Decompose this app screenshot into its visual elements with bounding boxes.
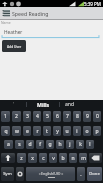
button[interactable]: k [76,140,84,149]
button[interactable]: Backspace [89,153,102,163]
staticText: r [36,128,39,135]
staticText: 9 [86,113,89,120]
staticText: 2 [15,113,18,120]
staticText: d [28,141,32,148]
button[interactable]: g [46,140,54,149]
button[interactable]: n [69,153,77,163]
staticText: f [39,141,41,148]
staticText: n [71,155,75,162]
button[interactable]: e [23,126,31,136]
staticText: Mills [37,101,50,108]
button[interactable]: j [66,140,74,149]
button[interactable]: b [59,153,67,163]
staticText: . [80,171,82,178]
staticText: q [4,128,8,135]
button[interactable]: d [26,140,34,149]
button[interactable]: Mills [27,100,59,109]
button[interactable]: m [79,153,87,163]
button[interactable]: u [63,126,71,136]
button[interactable]: . [77,167,85,181]
staticText: k [79,141,82,148]
button[interactable]: Settings [16,167,24,181]
staticText: w [15,128,19,135]
button[interactable]: z [17,153,26,163]
staticText: a [7,141,10,148]
button[interactable]: x [28,153,37,163]
staticText: ‘ [13,101,14,108]
button[interactable]: 0 [93,111,101,122]
staticText: p [95,128,99,135]
staticText: Name [1,20,11,25]
staticText: 5:39 PM [84,1,101,7]
staticText: Speed Reading [12,10,49,17]
button[interactable]: a [4,140,13,149]
staticText: g [48,141,52,148]
button[interactable]: v [49,153,57,163]
button[interactable]: 3 [23,111,31,122]
staticText: e [26,128,29,135]
staticText: h [58,141,62,148]
staticText: 8 [76,113,79,120]
button[interactable]: l [86,140,94,149]
button[interactable]: s [15,140,24,149]
button[interactable]: and [60,100,79,109]
staticText: j [69,141,71,148]
staticText: u [65,128,69,135]
staticText: o [85,128,89,135]
staticText: s [18,141,21,148]
staticText: 3 [26,113,29,120]
button[interactable]: 8 [73,111,81,122]
button[interactable]: o [83,126,91,136]
button[interactable]: 7 [63,111,71,122]
button[interactable]: 2 [12,111,21,122]
staticText: x [31,155,34,162]
button[interactable]: 1 [1,111,10,122]
button[interactable]: w [12,126,21,136]
button[interactable]: Space [26,167,75,181]
staticText: 4 [36,113,39,120]
staticText: z [20,155,23,162]
staticText: Sym [3,171,12,177]
staticText: Add User [7,44,22,48]
button[interactable]: f [36,140,44,149]
staticText: 5 [46,113,49,120]
button[interactable]: Shift [1,153,15,163]
staticText: 6 [56,113,59,120]
button[interactable]: 6 [53,111,61,122]
button[interactable]: 5 [43,111,51,122]
staticText: 0 [96,113,99,120]
button[interactable]: r [33,126,41,136]
other: App icon [2,9,10,17]
button[interactable]: y [53,126,61,136]
staticText: m [81,155,86,162]
staticText: and [65,101,74,108]
button[interactable]: 4 [33,111,41,122]
staticText: Done [89,171,100,177]
button[interactable]: q [1,126,10,136]
staticText: t [46,128,48,135]
button[interactable]: Done [87,167,102,181]
button[interactable]: i [73,126,81,136]
button[interactable]: ‘ [0,100,26,109]
staticText: 7 [66,113,69,120]
staticText: y [56,128,59,135]
staticText: i [76,128,78,135]
staticText: Heather [4,29,23,36]
staticText: c [42,155,45,162]
button[interactable]: h [56,140,64,149]
staticText: 1 [4,113,7,120]
button[interactable]: Sym [1,167,14,181]
staticText: v [52,155,55,162]
staticText: l [89,141,91,148]
staticText: b [61,155,65,162]
button[interactable]: c [39,153,47,163]
button[interactable]: t [43,126,51,136]
button[interactable]: Add User [2,40,26,52]
staticText: English(UK) [41,171,61,176]
button[interactable]: 9 [83,111,91,122]
button[interactable]: p [93,126,101,136]
